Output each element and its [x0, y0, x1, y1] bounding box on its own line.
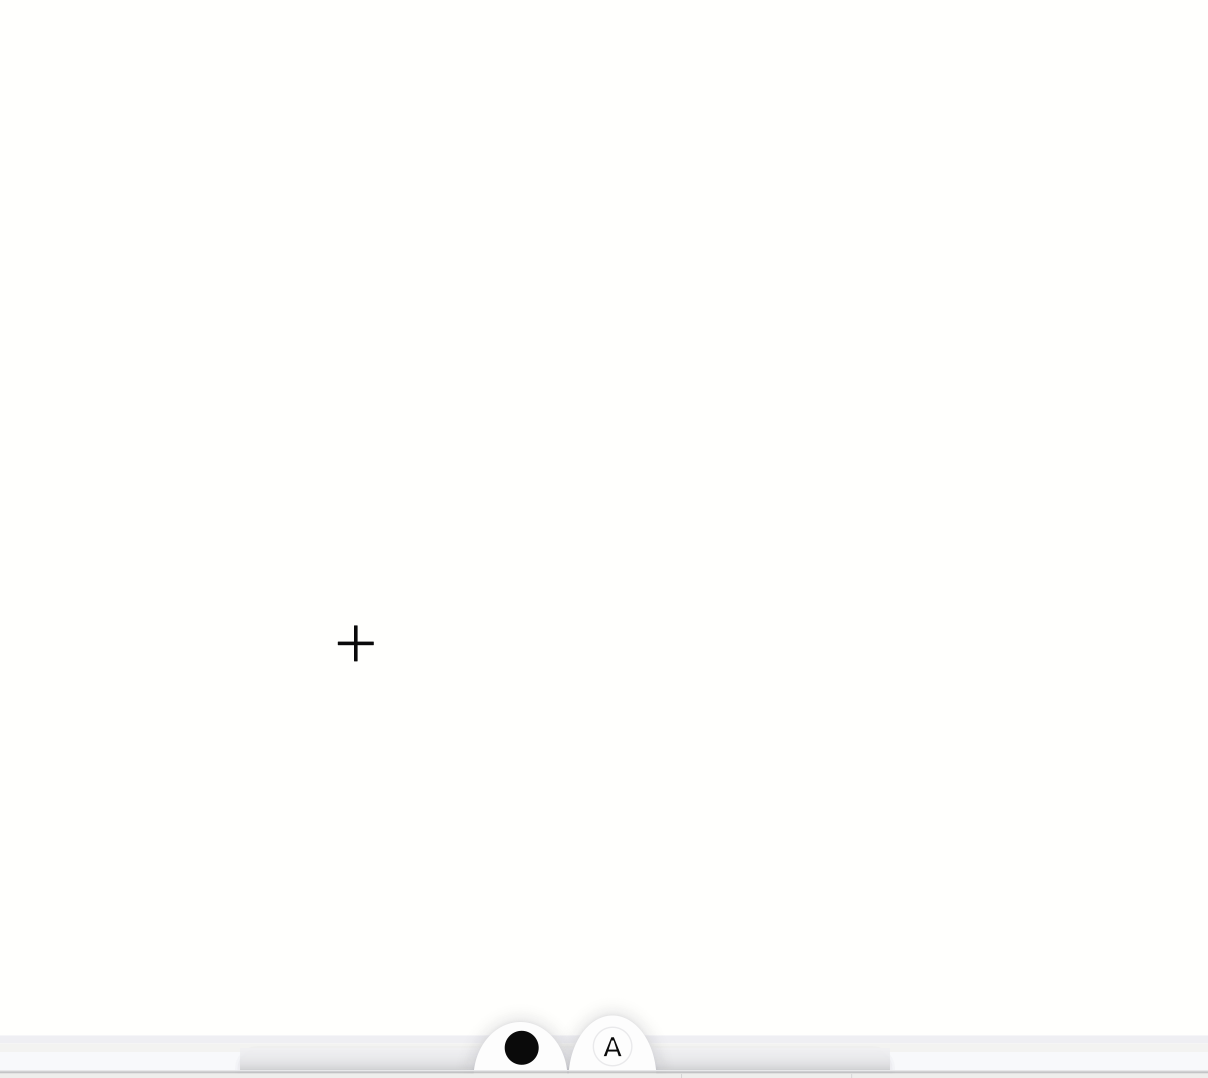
button[interactable]: Colour [478, 1013, 566, 1078]
button[interactable]: Text [569, 1011, 657, 1078]
